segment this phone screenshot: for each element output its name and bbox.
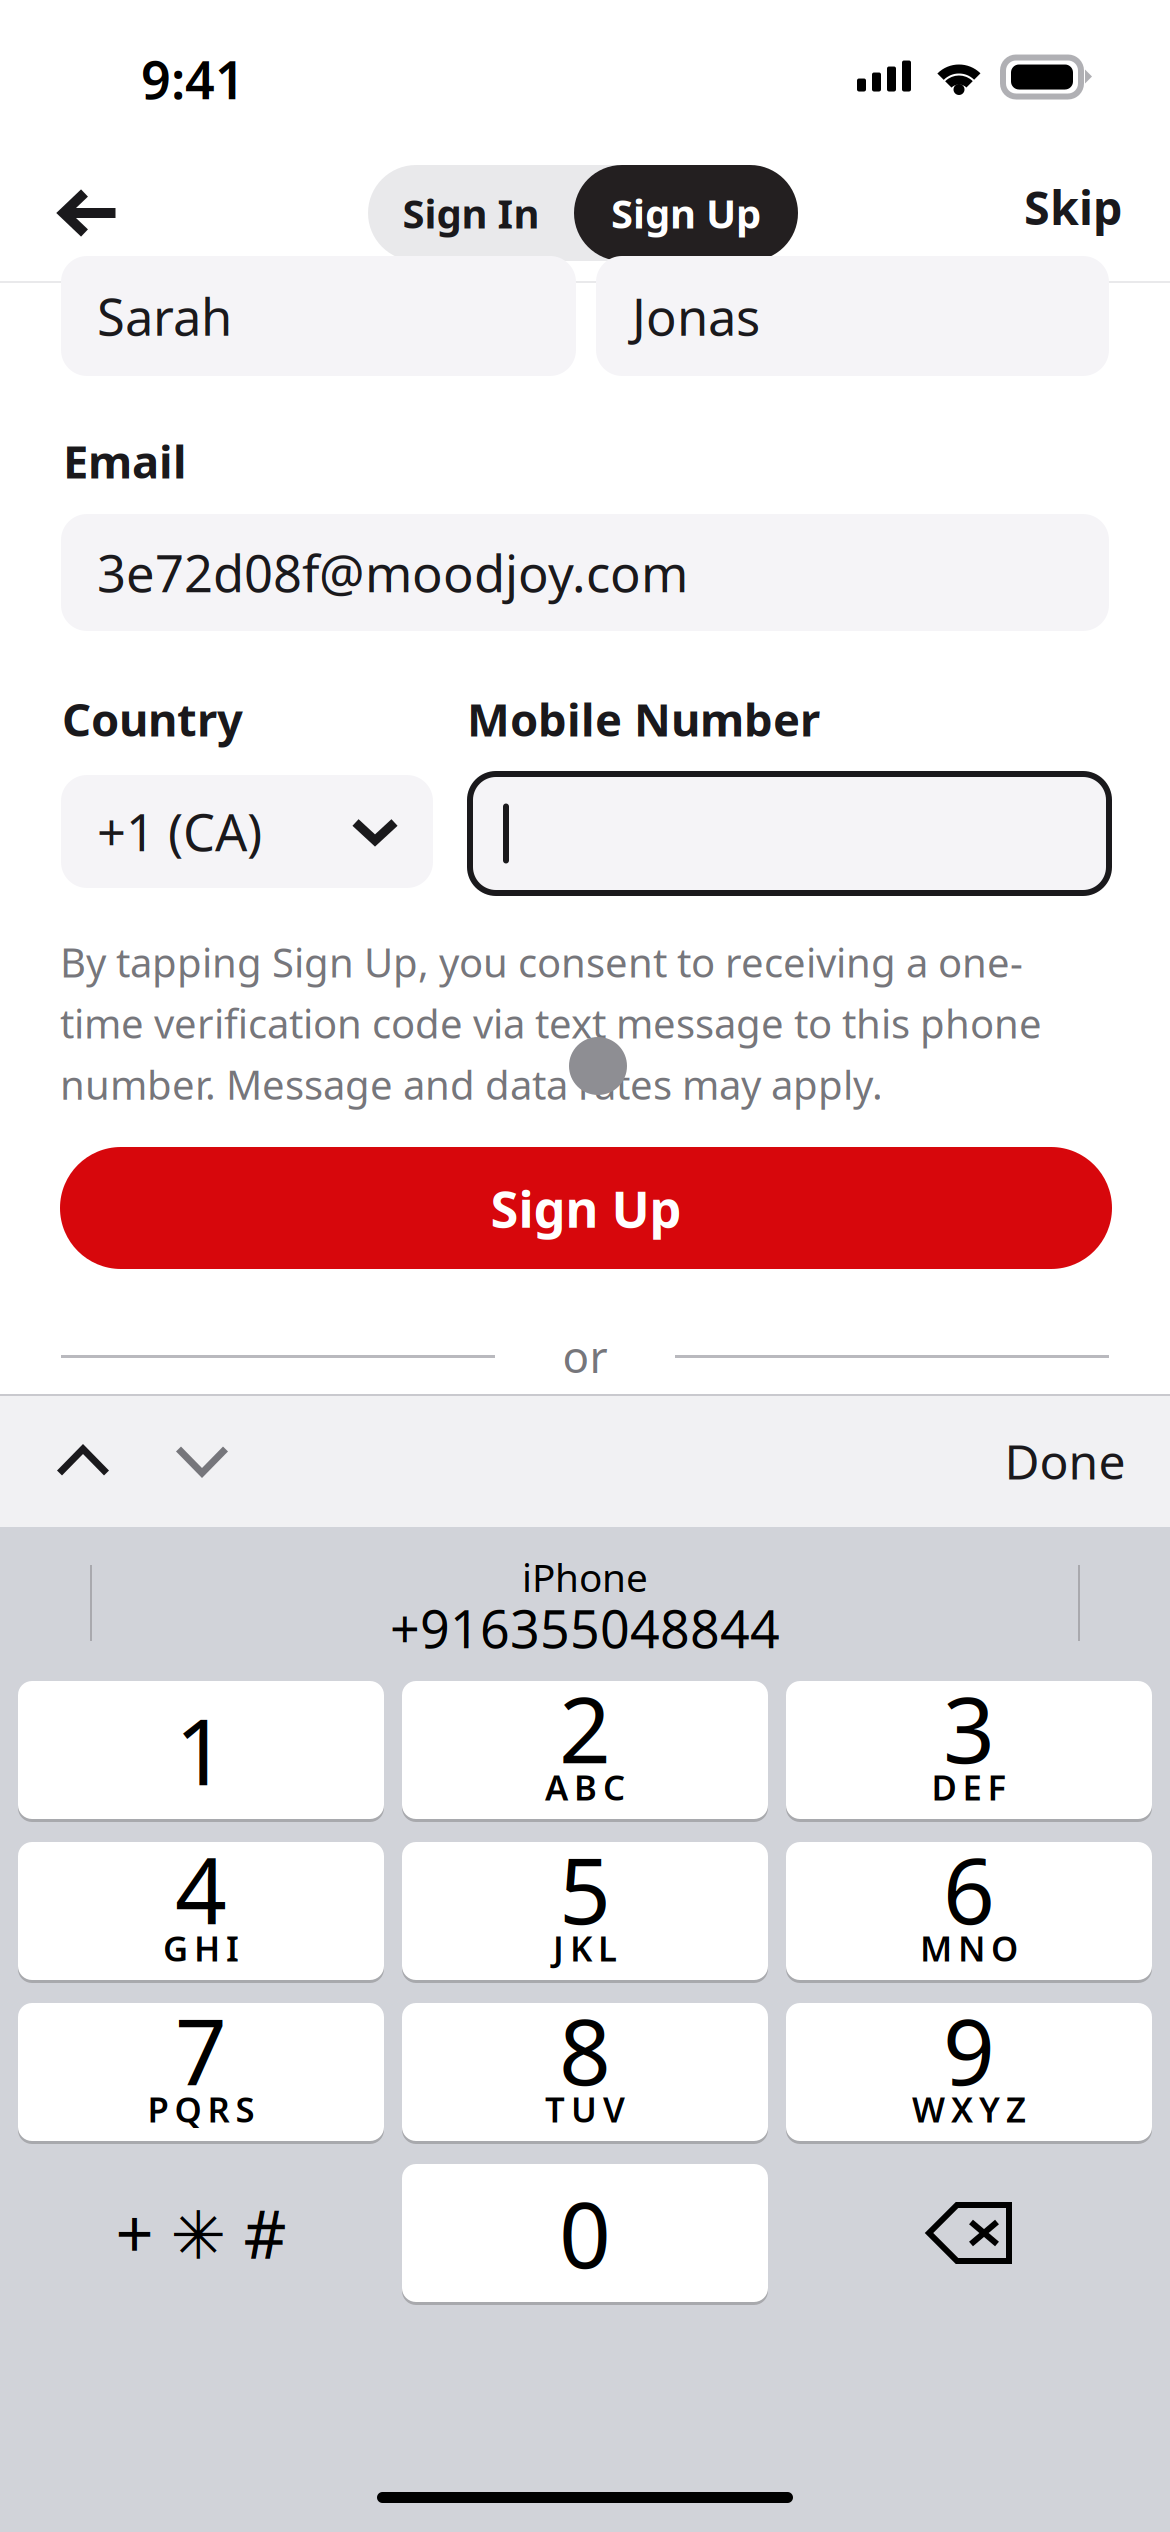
button[interactable]: Sign Up [60, 1147, 1112, 1269]
button[interactable]: Previous field [56, 1445, 110, 1476]
staticText: iPhone [522, 1551, 648, 1603]
staticText: Jonas [632, 282, 760, 350]
staticText: 9 [943, 1990, 995, 2110]
staticText: Sign Up [611, 186, 761, 239]
staticText: A B C [545, 1764, 625, 1810]
staticText: Country [62, 689, 243, 749]
staticText: Sign Up [490, 1174, 681, 1242]
staticText: M N O [920, 1925, 1018, 1971]
staticText: 9:41 [141, 44, 245, 114]
button[interactable]: Next field [175, 1445, 229, 1476]
staticText: 0 [559, 2173, 611, 2293]
staticText: 1 [175, 1690, 227, 1810]
staticText: Mobile Number [467, 689, 820, 749]
staticText: Skip [1024, 176, 1122, 238]
button[interactable]: 3 [786, 1681, 1152, 1819]
staticText: +1 (CA) [97, 798, 262, 865]
staticText: time verification code via text message … [60, 996, 1042, 1049]
button[interactable]: 7 [18, 2003, 384, 2141]
staticText: 3e72d08f@moodjoy.com [97, 539, 688, 606]
staticText: 2 [559, 1668, 611, 1788]
staticText: G H I [163, 1925, 239, 1971]
button[interactable]: 2 [402, 1681, 768, 1819]
button[interactable]: 0 [402, 2164, 768, 2302]
button[interactable]: 1 [18, 1681, 384, 1819]
staticText: Sign In [402, 186, 539, 239]
staticText: Sarah [97, 282, 232, 350]
staticText: T U V [545, 2086, 625, 2132]
button[interactable]: Skip [1006, 164, 1140, 250]
staticText: J K L [553, 1925, 617, 1971]
button[interactable]: 4 [18, 1842, 384, 1980]
staticText: or [562, 1327, 607, 1385]
staticText: + ✳ # [115, 2189, 286, 2277]
button[interactable]: Sign Up [574, 165, 798, 261]
button[interactable]: Done [984, 1415, 1145, 1507]
button[interactable] [470, 774, 1109, 893]
button[interactable]: Back [57, 188, 120, 238]
staticText: number. Message and data rates may apply… [60, 1058, 883, 1111]
button[interactable]: Plus, asterisk, hash [18, 2164, 384, 2302]
staticText: 5 [559, 1829, 611, 1949]
button[interactable]: 5 [402, 1842, 768, 1980]
staticText: P Q R S [147, 2086, 254, 2132]
button[interactable]: +1 (CA) [61, 775, 433, 888]
button[interactable]: Sign In [368, 165, 574, 261]
button[interactable]: Delete [925, 2201, 1013, 2265]
staticText: 8 [559, 1990, 611, 2110]
button[interactable]: 6 [786, 1842, 1152, 1980]
staticText: 4 [175, 1829, 227, 1949]
staticText: Done [1004, 1429, 1125, 1493]
staticText: 7 [175, 1990, 227, 2110]
staticText: D E F [931, 1764, 1006, 1810]
staticText: 3 [943, 1668, 995, 1788]
staticText: W X Y Z [912, 2086, 1026, 2132]
staticText: 6 [943, 1829, 995, 1949]
staticText: Email [63, 431, 187, 491]
staticText: By tapping Sign Up, you consent to recei… [60, 935, 1023, 988]
button[interactable]: 9 [786, 2003, 1152, 2141]
staticText: +916355048844 [390, 1593, 780, 1663]
button[interactable]: 8 [402, 2003, 768, 2141]
